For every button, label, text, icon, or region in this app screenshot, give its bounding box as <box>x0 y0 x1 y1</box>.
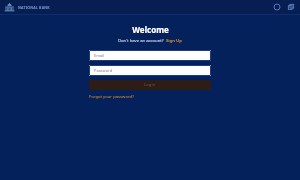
staticText: NATIONAL BANK <box>18 5 50 10</box>
button[interactable]: Email <box>89 50 211 61</box>
staticText: Password <box>94 68 113 73</box>
staticText: Forgot your password? <box>89 94 134 100</box>
button[interactable]: Help <box>272 2 282 12</box>
button[interactable]: Forgot your password? <box>89 94 134 100</box>
button[interactable]: Language <box>286 2 296 12</box>
staticText: Sign Up <box>166 38 182 44</box>
staticText: Login <box>144 82 156 88</box>
staticText: Email <box>94 53 105 58</box>
button[interactable]: Password <box>89 65 211 76</box>
button[interactable]: Sign Up <box>166 38 182 44</box>
button[interactable]: Login <box>89 80 211 90</box>
staticText: Don't have an account? <box>118 38 164 44</box>
staticText: Welcome <box>132 24 169 35</box>
